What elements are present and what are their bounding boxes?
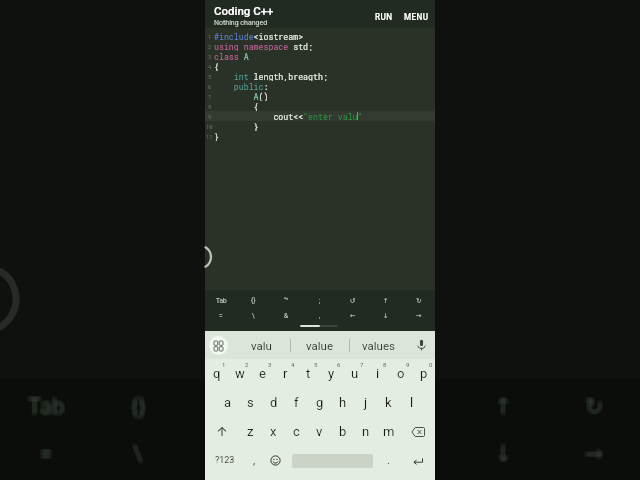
staticText: ↓ <box>493 442 512 468</box>
staticText: “” <box>224 395 239 421</box>
staticText: ↓ <box>494 439 513 465</box>
button[interactable]: Enter <box>400 446 435 475</box>
staticText: h <box>339 395 347 410</box>
staticText: “” <box>221 396 236 422</box>
staticText: = <box>39 441 52 467</box>
staticText: ↑ <box>383 297 389 305</box>
staticText: Tab <box>30 394 67 420</box>
button[interactable]: → <box>402 308 435 323</box>
button[interactable]: ↓ <box>369 308 402 323</box>
button[interactable]: , <box>245 446 264 475</box>
button[interactable]: l <box>400 388 423 417</box>
staticText: ↑ <box>492 394 511 420</box>
button[interactable]: RUN <box>373 7 395 27</box>
button[interactable]: 9 <box>389 359 412 388</box>
button[interactable]: m <box>377 417 400 446</box>
button[interactable]: 4 <box>274 359 297 388</box>
button[interactable]: Backspace <box>400 417 435 446</box>
staticText: ↺ <box>405 395 424 421</box>
staticText: → <box>587 441 606 467</box>
button[interactable]: 8 <box>366 359 389 388</box>
staticText: 4 <box>208 63 212 70</box>
button[interactable]: ↻ <box>402 294 435 308</box>
staticText: → <box>585 442 604 468</box>
button[interactable]: Tab <box>205 294 237 308</box>
button[interactable]: g <box>308 388 331 417</box>
staticText: ; <box>319 396 324 422</box>
staticText: Tab <box>27 393 64 419</box>
button[interactable]: z <box>239 417 262 446</box>
button[interactable]: \ <box>237 308 270 323</box>
button[interactable]: h <box>331 388 354 417</box>
staticText: = <box>38 441 51 467</box>
button[interactable]: 5 <box>297 359 320 388</box>
button[interactable]: 2 <box>228 359 251 388</box>
button[interactable]: 1 <box>205 359 228 388</box>
button[interactable]: ?123 <box>205 446 245 475</box>
button[interactable]: 3 <box>251 359 274 388</box>
button[interactable]: = <box>205 308 237 323</box>
button[interactable]: {} <box>237 294 270 308</box>
staticText: ↑ <box>494 393 513 419</box>
button[interactable]: ; <box>303 294 336 308</box>
button[interactable]: 0 <box>412 359 435 388</box>
staticText: “” <box>222 394 237 420</box>
button[interactable]: “” <box>270 294 303 308</box>
staticText: “” <box>225 392 240 418</box>
staticText: ↓ <box>495 439 514 465</box>
button[interactable]: MENU <box>402 7 431 27</box>
staticText: ↻ <box>586 392 605 418</box>
button[interactable]: c <box>285 417 308 446</box>
button[interactable]: . <box>377 446 400 475</box>
button[interactable]: x <box>262 417 285 446</box>
staticText: & <box>224 442 238 468</box>
button[interactable]: ← <box>336 308 369 323</box>
button[interactable]: v <box>308 417 331 446</box>
button[interactable]: , <box>303 308 336 323</box>
staticText: {} <box>133 392 148 418</box>
staticText: , <box>318 442 323 468</box>
button[interactable]: Shift <box>205 417 239 446</box>
staticText: , <box>321 440 326 466</box>
button[interactable]: j <box>354 388 377 417</box>
button[interactable]: ↑ <box>369 294 402 308</box>
button[interactable]: 6 <box>320 359 343 388</box>
button[interactable]: & <box>270 308 303 323</box>
staticText: ↺ <box>403 395 422 421</box>
button[interactable]: ↺ <box>336 294 369 308</box>
button[interactable]: s <box>239 388 262 417</box>
staticText: → <box>585 441 604 467</box>
staticText: ← <box>401 443 420 469</box>
staticText: = <box>41 441 54 467</box>
staticText: ↑ <box>493 392 512 418</box>
button[interactable]: Keyboard toolbar <box>205 331 232 359</box>
staticText: 5 <box>208 73 212 80</box>
staticText: = <box>39 440 52 466</box>
staticText: ↺ <box>401 394 420 420</box>
button[interactable]: 7 <box>343 359 366 388</box>
button[interactable]: valu <box>232 331 290 359</box>
staticText: → <box>587 440 606 466</box>
staticText: ↑ <box>495 396 514 422</box>
button[interactable]: f <box>285 388 308 417</box>
staticText: ; <box>317 396 322 422</box>
button[interactable]: values <box>349 331 408 359</box>
button[interactable]: Space <box>287 446 377 475</box>
button[interactable]: a <box>216 388 239 417</box>
button[interactable]: Voice input <box>408 331 435 359</box>
staticText: Tab <box>28 392 65 418</box>
staticText: ← <box>404 439 423 465</box>
staticText: r <box>283 366 288 381</box>
staticText: {} <box>132 393 147 419</box>
button[interactable]: d <box>262 388 285 417</box>
button[interactable]: b <box>331 417 354 446</box>
staticText: ↑ <box>492 392 511 418</box>
staticText: Tab <box>26 395 63 421</box>
button[interactable]: Emoji <box>264 446 287 475</box>
staticText: ↑ <box>494 392 513 418</box>
staticText: & <box>221 439 235 465</box>
button[interactable]: value <box>290 331 349 359</box>
button[interactable]: n <box>354 417 377 446</box>
staticText: → <box>586 440 605 466</box>
button[interactable]: k <box>377 388 400 417</box>
